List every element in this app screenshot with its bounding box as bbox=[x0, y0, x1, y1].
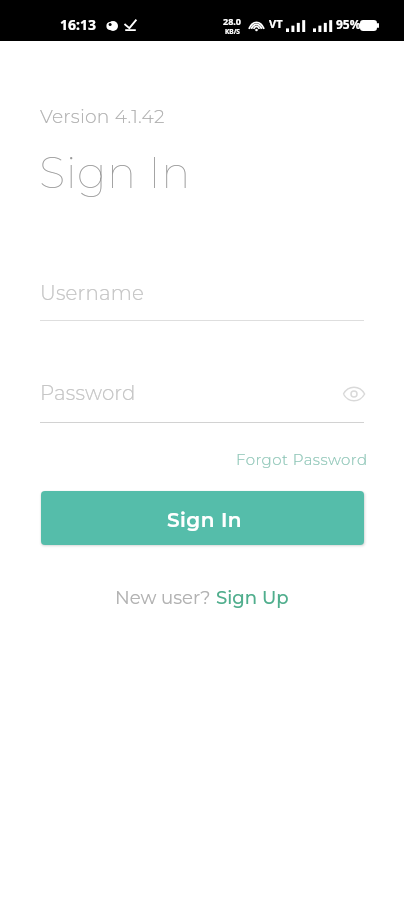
staticText: 28.0 bbox=[223, 15, 241, 27]
staticText: 16:13 bbox=[60, 15, 96, 34]
staticText: Forgot Password bbox=[236, 450, 368, 468]
staticText: Version 4.1.42 bbox=[40, 105, 165, 128]
staticText: 95% bbox=[336, 16, 361, 32]
staticText: Username bbox=[40, 281, 144, 305]
button[interactable]: Show password bbox=[340, 380, 368, 408]
button[interactable]: Forgot Password bbox=[233, 445, 370, 471]
button[interactable]: Sign Up bbox=[216, 586, 289, 608]
staticText: KB/S bbox=[225, 27, 240, 36]
button[interactable]: Sign In bbox=[41, 491, 364, 545]
staticText: Sign In bbox=[39, 146, 191, 199]
staticText: Password bbox=[40, 381, 136, 405]
staticText: Sign In bbox=[167, 508, 243, 532]
staticText: VT bbox=[269, 16, 283, 31]
staticText: New user? bbox=[115, 586, 216, 608]
